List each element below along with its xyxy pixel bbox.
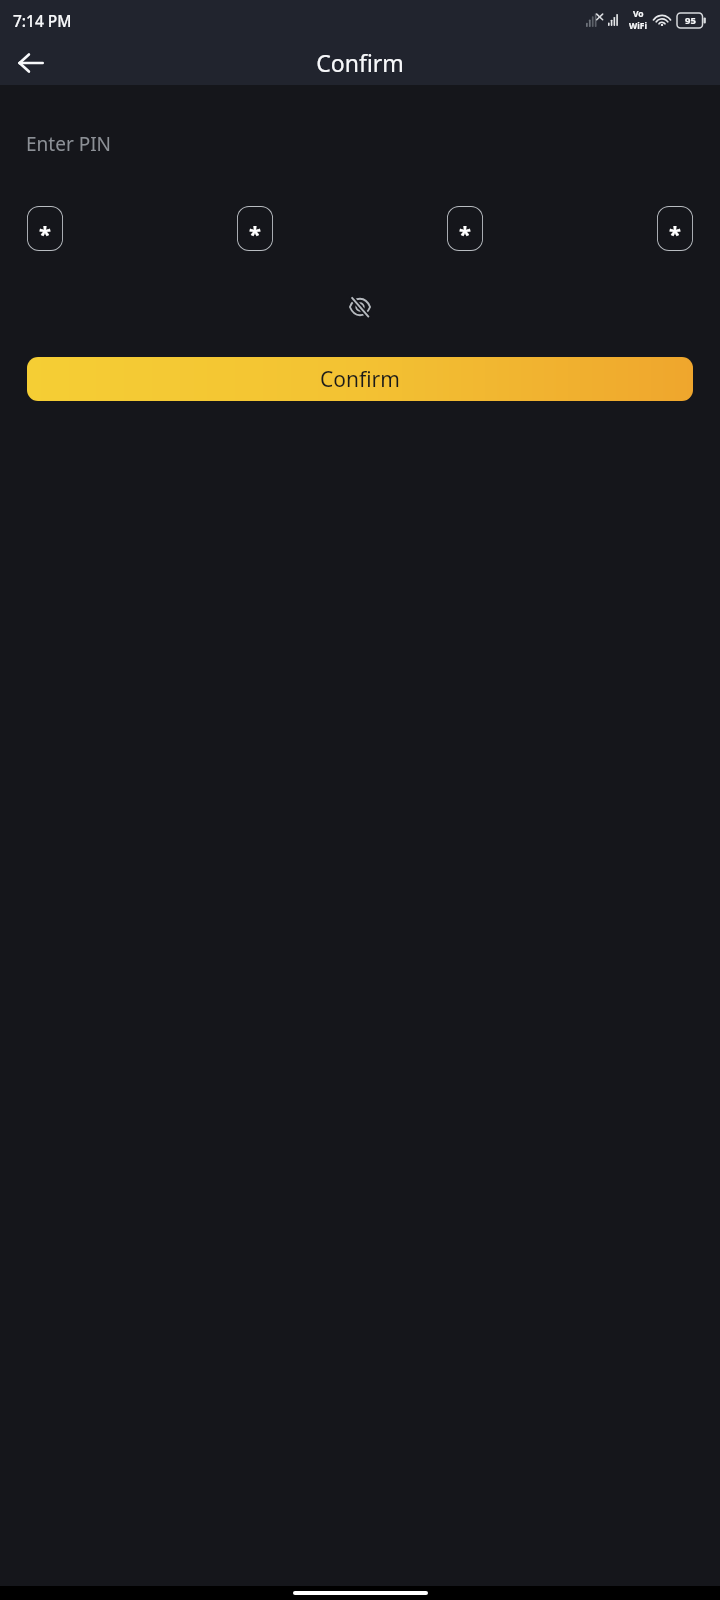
- staticText: Enter PIN: [26, 131, 112, 157]
- button[interactable]: *: [237, 206, 273, 251]
- button[interactable]: Confirm: [27, 357, 693, 401]
- staticText: WiFi: [629, 20, 647, 32]
- button[interactable]: *: [657, 206, 693, 251]
- staticText: Confirm: [320, 365, 400, 394]
- staticText: *: [669, 218, 681, 248]
- staticText: 7:14 PM: [13, 10, 72, 31]
- staticText: *: [39, 218, 51, 248]
- staticText: Vo: [633, 8, 644, 20]
- staticText: 95: [685, 14, 696, 27]
- button[interactable]: *: [447, 206, 483, 251]
- staticText: Confirm: [316, 47, 404, 78]
- staticText: *: [249, 218, 261, 248]
- staticText: *: [459, 218, 471, 248]
- button[interactable]: Hide PIN: [338, 285, 382, 329]
- button[interactable]: Back: [10, 42, 52, 84]
- button[interactable]: *: [27, 206, 63, 251]
